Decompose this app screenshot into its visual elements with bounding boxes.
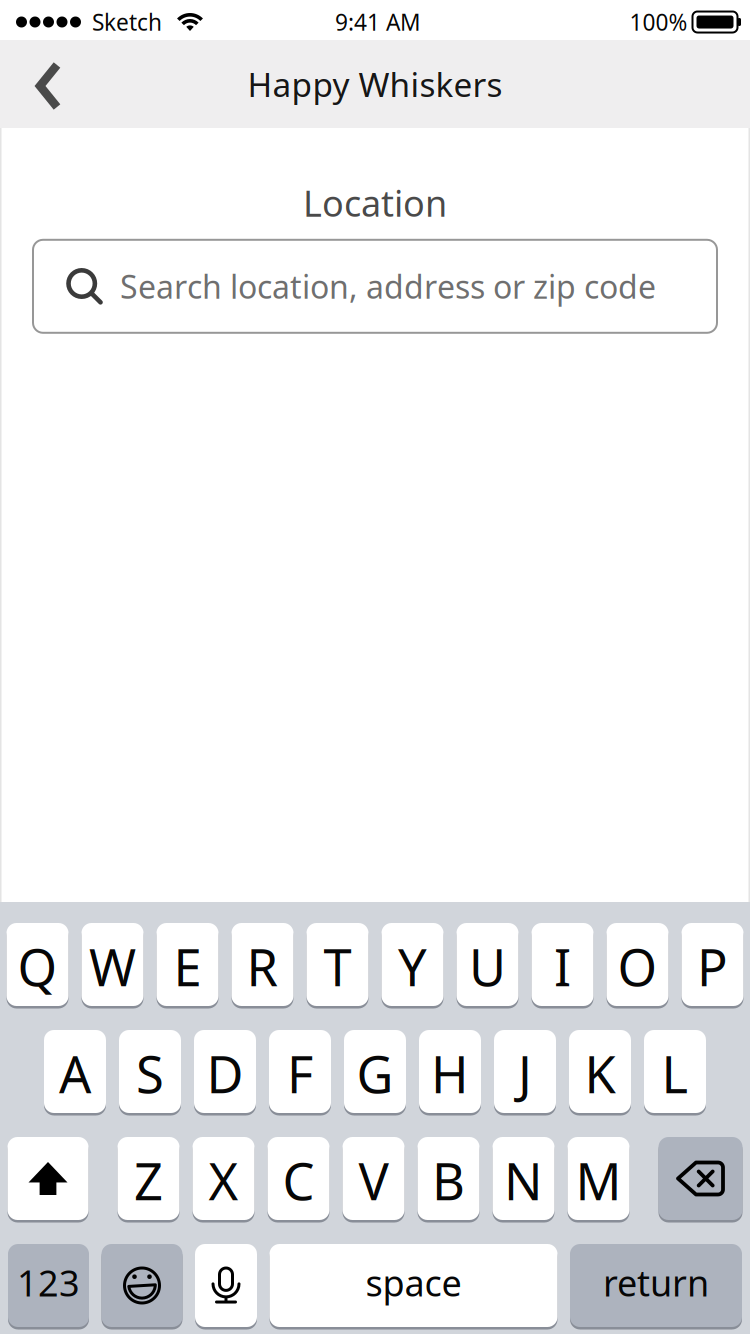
staticText: J — [518, 1040, 532, 1107]
button[interactable]: S — [119, 1030, 181, 1113]
staticText: Happy Whiskers — [247, 62, 502, 106]
staticText: X — [208, 1147, 238, 1214]
button[interactable]: T — [306, 923, 368, 1006]
button[interactable]: I — [531, 923, 593, 1006]
button[interactable]: A — [44, 1030, 106, 1113]
staticText: G — [356, 1040, 393, 1107]
button[interactable]: K — [569, 1030, 631, 1113]
button[interactable]: Back — [0, 40, 87, 128]
button[interactable]: return — [570, 1244, 742, 1327]
button[interactable]: C — [267, 1137, 329, 1220]
staticText: V — [358, 1147, 388, 1214]
staticText: O — [617, 933, 657, 1000]
staticText: Y — [398, 933, 427, 1000]
staticText: D — [206, 1040, 243, 1107]
button[interactable]: Shift — [7, 1137, 88, 1220]
staticText: Z — [134, 1147, 163, 1214]
staticText: M — [575, 1147, 621, 1214]
staticText: P — [697, 933, 728, 1000]
staticText: A — [59, 1040, 91, 1107]
button[interactable]: G — [344, 1030, 406, 1113]
staticText: K — [584, 1040, 615, 1107]
staticText: F — [287, 1040, 313, 1107]
staticText: U — [469, 933, 506, 1000]
button[interactable]: Search location, address or zip code — [33, 240, 717, 333]
button[interactable]: E — [156, 923, 218, 1006]
button[interactable]: Q — [6, 923, 68, 1006]
button[interactable]: Y — [381, 923, 443, 1006]
button[interactable]: space — [269, 1244, 557, 1327]
staticText: W — [89, 933, 136, 1000]
button[interactable]: Delete — [658, 1137, 742, 1220]
staticText: T — [323, 933, 351, 1000]
button[interactable]: V — [342, 1137, 404, 1220]
button[interactable]: F — [269, 1030, 331, 1113]
button[interactable]: M — [567, 1137, 629, 1220]
button[interactable]: Z — [117, 1137, 179, 1220]
button[interactable]: Emoji — [101, 1244, 182, 1327]
staticText: R — [246, 933, 278, 1000]
button[interactable]: D — [194, 1030, 256, 1113]
button[interactable]: R — [231, 923, 293, 1006]
staticText: H — [431, 1040, 469, 1107]
staticText: B — [432, 1147, 465, 1214]
button[interactable]: N — [492, 1137, 554, 1220]
button[interactable]: X — [192, 1137, 254, 1220]
staticText: 123 — [17, 1259, 80, 1306]
button[interactable]: W — [81, 923, 143, 1006]
button[interactable]: J — [494, 1030, 556, 1113]
staticText: Search location, address or zip code — [120, 265, 656, 308]
staticText: C — [282, 1147, 314, 1214]
staticText: Sketch — [92, 7, 162, 37]
button[interactable]: L — [644, 1030, 706, 1113]
staticText: return — [603, 1259, 709, 1306]
staticText: 9:41 AM — [335, 7, 421, 37]
button[interactable]: O — [606, 923, 668, 1006]
button[interactable]: P — [681, 923, 743, 1006]
button[interactable]: 123 — [8, 1244, 89, 1327]
staticText: L — [661, 1040, 688, 1107]
staticText: I — [554, 933, 571, 1000]
staticText: N — [504, 1147, 543, 1214]
button[interactable]: U — [456, 923, 518, 1006]
staticText: 100% — [629, 7, 687, 37]
button[interactable]: Dictate — [195, 1244, 257, 1327]
button[interactable]: H — [419, 1030, 481, 1113]
staticText: S — [136, 1040, 164, 1107]
staticText: space — [365, 1259, 461, 1306]
staticText: Location — [303, 179, 447, 227]
staticText: Q — [17, 933, 57, 1000]
staticText: E — [173, 933, 201, 1000]
button[interactable]: B — [417, 1137, 479, 1220]
